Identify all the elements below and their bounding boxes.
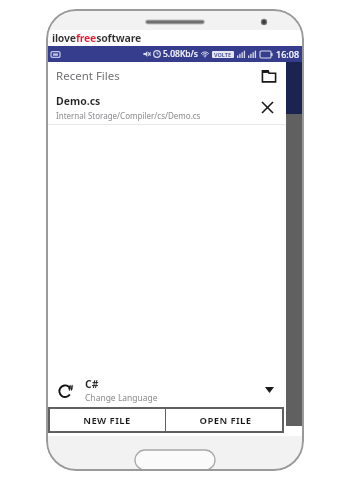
staticText: Internal Storage/Compiler/cs/Demo.cs: [56, 110, 201, 121]
staticText: NEW FILE: [83, 414, 131, 427]
staticText: ilovefreesoftware: [52, 31, 142, 45]
staticText: 16:08: [276, 48, 300, 60]
button[interactable]: Remove from recent files: [256, 96, 278, 118]
staticText: Change Language: [85, 392, 158, 404]
button[interactable]: C#: [46, 374, 304, 406]
staticText: VOLTE: [214, 51, 232, 58]
other: Expand language list: [260, 381, 278, 399]
button[interactable]: Demo.cs: [46, 90, 304, 124]
staticText: C#: [85, 377, 99, 391]
staticText: 5.08Kb/s: [163, 48, 198, 60]
button[interactable]: Browse folders: [258, 65, 280, 87]
staticText: OPEN FILE: [199, 414, 252, 427]
staticText: Recent Files: [56, 68, 120, 84]
staticText: Demo.cs: [56, 94, 101, 108]
button[interactable]: OPEN FILE: [166, 407, 284, 433]
button[interactable]: NEW FILE: [48, 407, 165, 433]
